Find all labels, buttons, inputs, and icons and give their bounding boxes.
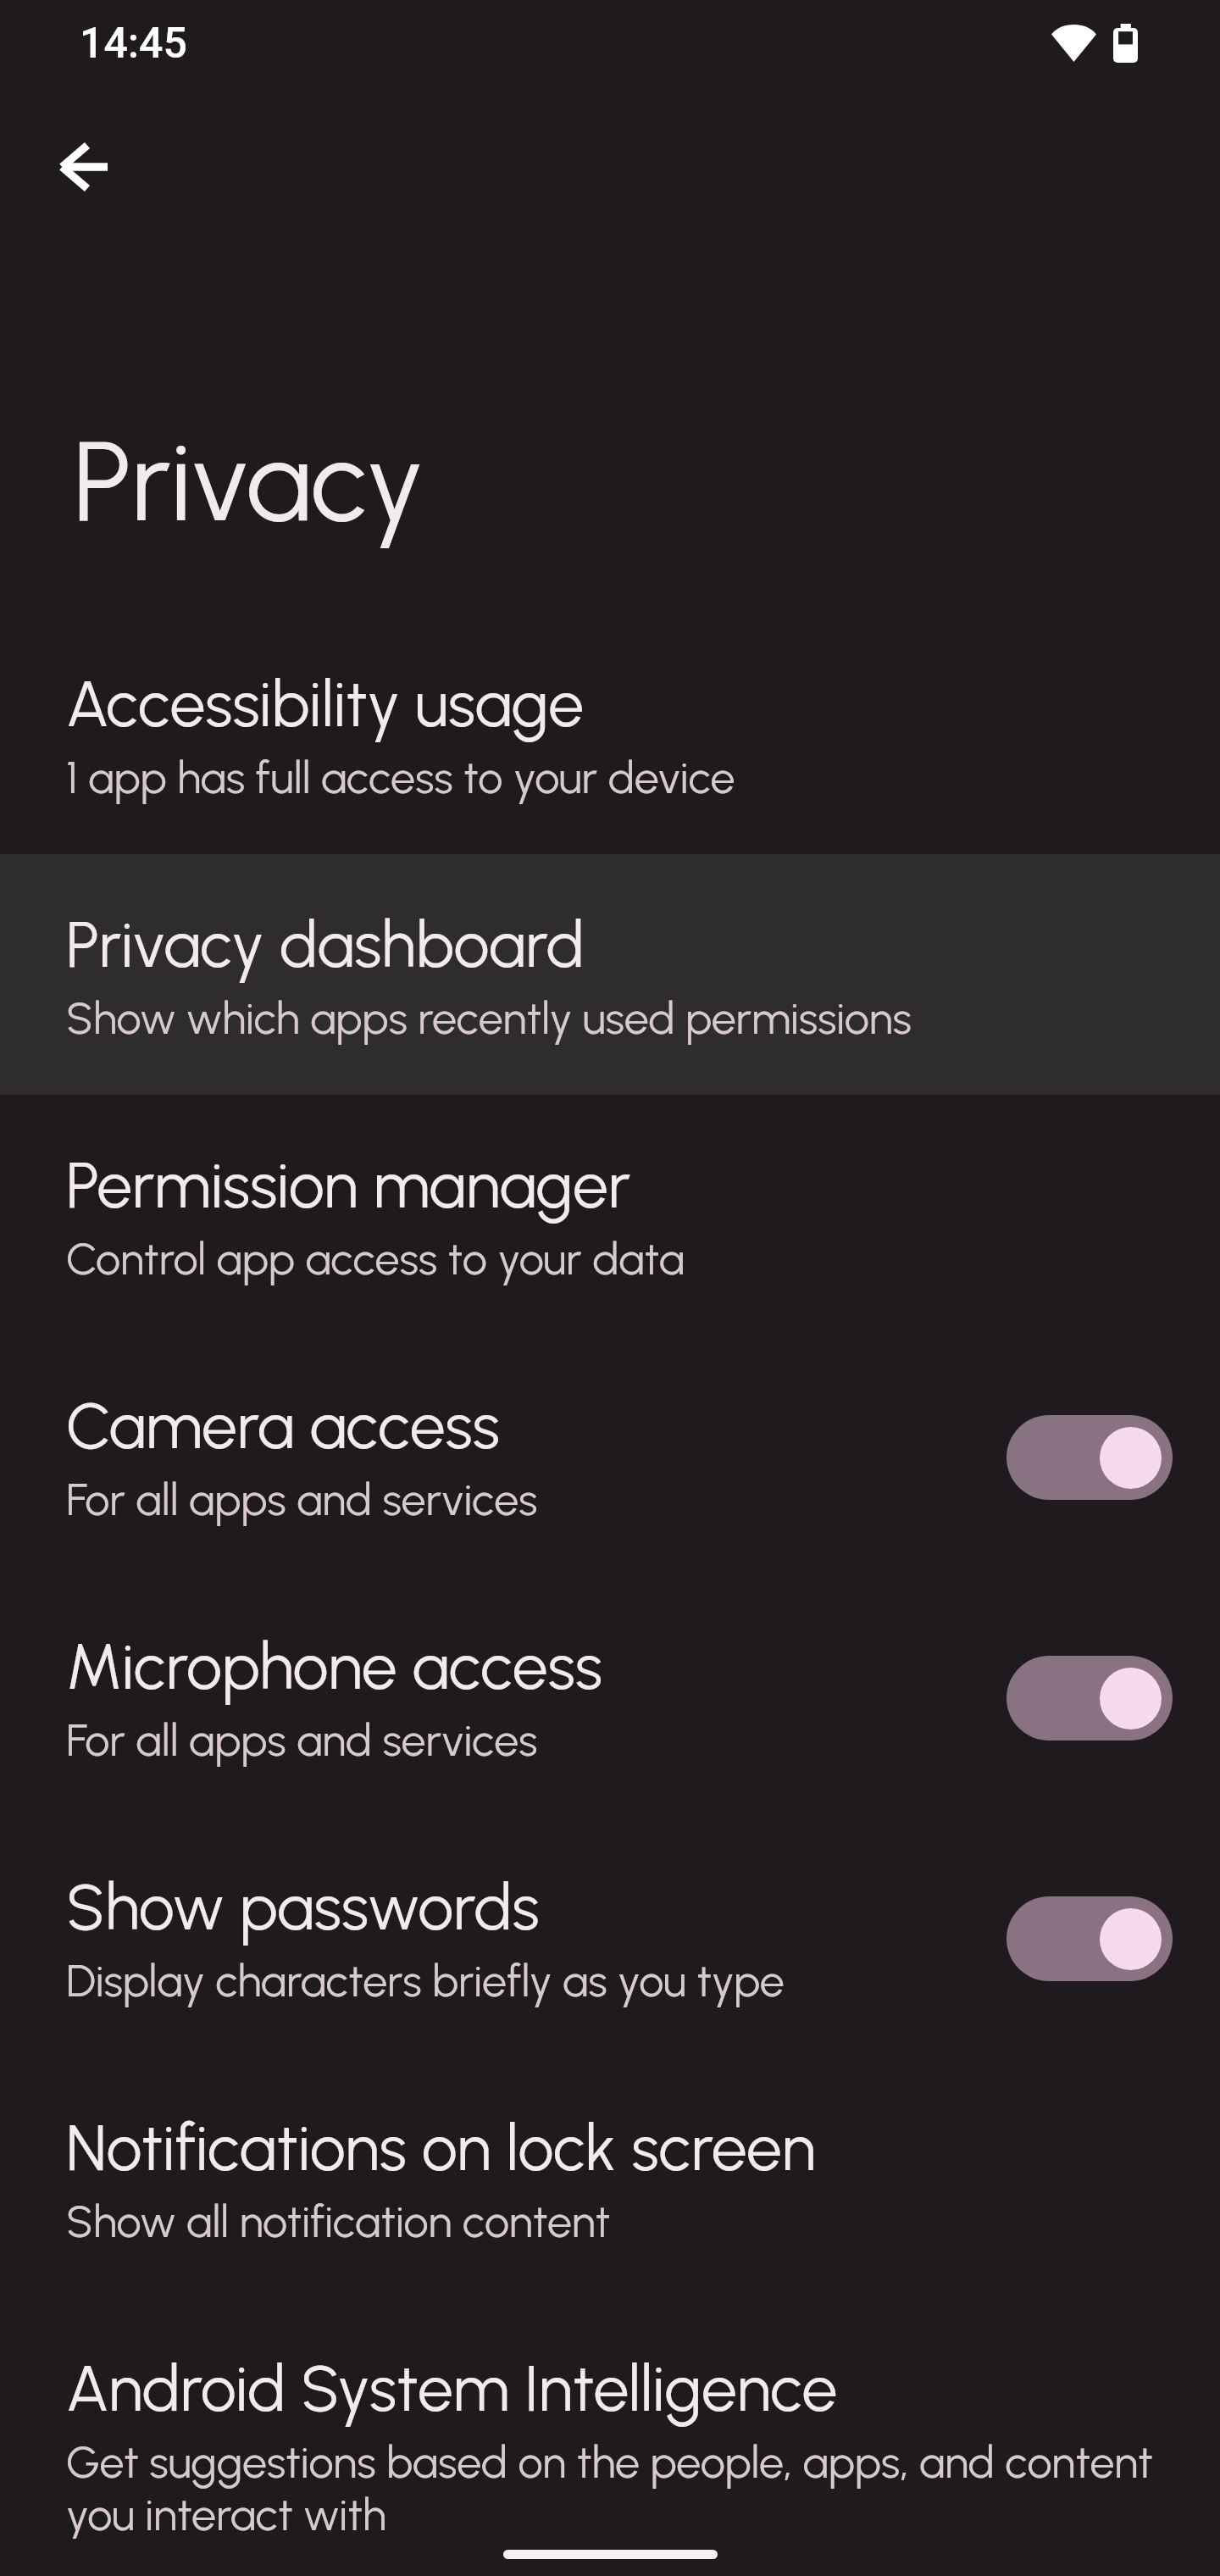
staticText: Android System Intelligence xyxy=(66,2353,838,2426)
staticText: Permission manager xyxy=(66,1150,631,1223)
button[interactable]: Show passwords xyxy=(0,1817,1220,2057)
staticText: 1 app has full access to your device xyxy=(66,752,735,804)
button[interactable]: Microphone access xyxy=(0,1576,1220,1817)
staticText: Accessibility usage xyxy=(66,669,585,741)
button[interactable]: Accessibility usage xyxy=(0,613,1220,854)
staticText: Display characters briefly as you type xyxy=(66,1955,785,2007)
staticText: For all apps and services xyxy=(66,1474,538,1526)
button[interactable]: Android System Intelligence xyxy=(0,2298,1220,2539)
staticText: Get suggestions based on the people, app… xyxy=(66,2436,1176,2539)
staticText: Privacy dashboard xyxy=(66,909,585,982)
button[interactable]: Show passwords, on xyxy=(1006,1896,1173,1981)
staticText: 14:45 xyxy=(80,19,187,69)
button[interactable]: Microphone access, on xyxy=(1006,1656,1173,1740)
button[interactable]: Privacy dashboard xyxy=(0,854,1220,1095)
staticText: Show all notification content xyxy=(66,2196,611,2248)
button[interactable]: Camera access, on xyxy=(1006,1415,1173,1500)
staticText: Microphone access xyxy=(66,1631,602,1704)
staticText: Notifications on lock screen xyxy=(66,2112,816,2185)
button[interactable]: Back xyxy=(26,130,131,204)
button[interactable]: Permission manager xyxy=(0,1095,1220,1335)
staticText: For all apps and services xyxy=(66,1714,538,1767)
staticText: Camera access xyxy=(66,1391,500,1463)
button[interactable]: Camera access xyxy=(0,1335,1220,1576)
staticText: Show passwords xyxy=(66,1872,540,1945)
staticText: Control app access to your data xyxy=(66,1233,685,1285)
button[interactable]: Notifications on lock screen xyxy=(0,2057,1220,2298)
staticText: Privacy xyxy=(73,419,424,547)
staticText: Show which apps recently used permission… xyxy=(66,992,912,1045)
